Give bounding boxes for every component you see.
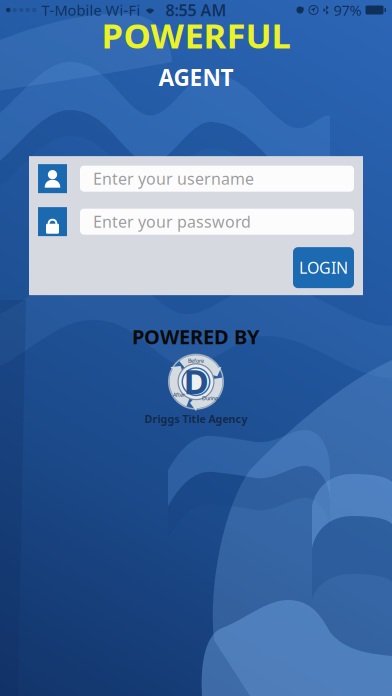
button[interactable]: Username: [38, 164, 67, 193]
staticText: LOGIN: [299, 257, 348, 278]
staticText: AGENT: [158, 62, 233, 92]
staticText: Enter your password: [93, 211, 251, 232]
staticText: T-Mobile Wi-Fi: [41, 0, 140, 20]
staticText: Before: [188, 357, 204, 364]
staticText: POWERFUL: [101, 12, 290, 58]
staticText: During: [202, 395, 218, 402]
staticText: After: [173, 391, 185, 398]
staticText: Enter your username: [93, 168, 254, 189]
staticText: POWERED BY: [132, 323, 260, 350]
button[interactable]: Password: [38, 207, 67, 236]
staticText: Driggs Title Agency: [144, 412, 247, 426]
staticText: 8:55 AM: [165, 0, 226, 21]
staticText: 97%: [333, 0, 361, 20]
button[interactable]: LOGIN: [293, 247, 354, 288]
staticText: D: [183, 358, 208, 404]
